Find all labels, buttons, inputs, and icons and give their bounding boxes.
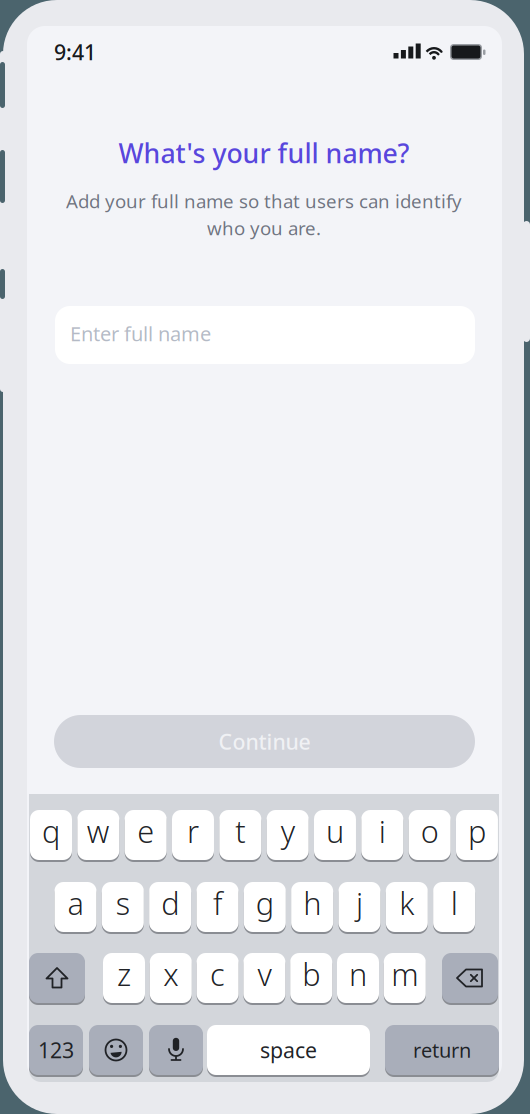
staticText: f [213,883,222,923]
staticText: return [413,1037,471,1063]
button[interactable]: p [456,810,498,860]
button[interactable]: c [197,953,239,1003]
staticText: s [116,883,130,923]
staticText: m [391,954,418,994]
button[interactable]: e [125,810,167,860]
staticText: u [326,811,344,851]
staticText: p [468,811,486,851]
button[interactable]: q [30,810,72,860]
staticText: Add your full name so that users can ide… [66,189,462,213]
staticText: l [451,883,458,923]
staticText: v [257,954,271,994]
button[interactable]: y [267,810,309,860]
staticText: b [302,954,320,994]
button[interactable]: return [385,1025,499,1075]
staticText: Enter full name [70,320,211,347]
button[interactable]: n [337,953,379,1003]
staticText: d [161,883,179,923]
staticText: q [42,811,60,851]
button[interactable]: Enter full name [55,306,475,364]
staticText: y [281,811,295,851]
button[interactable]: v [243,953,285,1003]
staticText: What's your full name? [118,135,409,171]
button[interactable]: Continue [54,715,475,768]
staticText: 123 [38,1036,74,1064]
button[interactable]: j [338,882,380,932]
button[interactable]: b [290,953,332,1003]
button[interactable]: u [314,810,356,860]
button[interactable]: w [77,810,119,860]
staticText: who you are. [207,216,321,240]
staticText: z [117,954,131,994]
button[interactable]: x [150,953,192,1003]
button[interactable]: i [361,810,403,860]
button[interactable]: o [409,810,451,860]
button[interactable]: h [291,882,333,932]
button[interactable]: Numbers [29,1025,83,1075]
button[interactable]: f [196,882,238,932]
button[interactable]: r [172,810,214,860]
staticText: w [87,811,110,851]
button[interactable]: d [149,882,191,932]
staticText: o [421,811,439,851]
staticText: Continue [218,727,310,756]
staticText: c [210,954,225,994]
staticText: a [67,883,83,923]
button[interactable]: a [54,882,96,932]
button[interactable]: m [384,953,426,1003]
button[interactable]: Emoji [89,1025,143,1075]
staticText: x [163,954,178,994]
staticText: r [187,811,199,851]
staticText: t [235,811,245,851]
button[interactable]: s [102,882,144,932]
staticText: i [379,811,386,851]
button[interactable]: Dictate [149,1025,203,1075]
button[interactable]: g [244,882,286,932]
staticText: h [303,883,321,923]
button[interactable]: l [433,882,475,932]
staticText: space [260,1036,317,1064]
staticText: n [349,954,367,994]
staticText: g [256,883,274,923]
button[interactable]: space [207,1025,370,1075]
staticText: 9:41 [54,38,96,66]
staticText: e [137,811,154,851]
button[interactable]: z [103,953,145,1003]
button[interactable]: Shift [29,953,85,1003]
button[interactable]: Delete [442,953,498,1003]
button[interactable]: k [386,882,428,932]
staticText: j [356,883,363,923]
button[interactable]: t [219,810,261,860]
staticText: k [399,883,414,923]
